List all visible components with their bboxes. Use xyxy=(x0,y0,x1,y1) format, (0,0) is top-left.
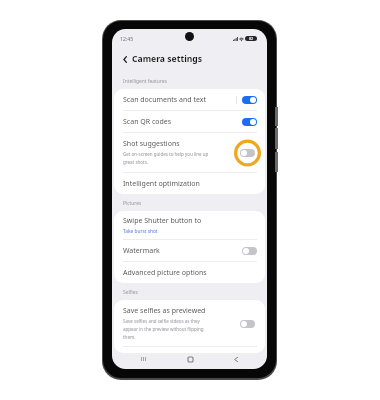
button[interactable]: Watermark xyxy=(114,240,265,261)
staticText: 12:45 xyxy=(120,35,134,42)
button[interactable]: Save selfies as previewed xyxy=(114,300,265,346)
button[interactable]: Turn on xyxy=(240,149,255,157)
button[interactable]: Intelligent optimization xyxy=(114,173,265,194)
button[interactable]: Back xyxy=(118,51,131,67)
staticText: Pictures xyxy=(123,200,142,207)
button[interactable]: Back xyxy=(228,351,244,367)
staticText: Scan documents and text xyxy=(123,95,236,105)
staticText: Save selfies and selfie videos as they a… xyxy=(123,318,204,341)
staticText: Scan QR codes xyxy=(123,117,242,127)
staticText: Intelligent optimization xyxy=(123,179,200,189)
button[interactable]: Scan QR codes xyxy=(114,111,265,132)
button[interactable]: Home xyxy=(182,351,198,367)
staticText: Intelligent features xyxy=(123,78,167,85)
button[interactable]: Turn off xyxy=(242,96,257,104)
button[interactable]: Turn on xyxy=(240,320,255,328)
button[interactable]: Advanced picture options xyxy=(114,262,265,283)
staticText: Take burst shot xyxy=(123,228,158,235)
button[interactable]: Recents xyxy=(135,351,151,367)
staticText: Advanced picture options xyxy=(123,268,207,278)
button[interactable]: Shot suggestions xyxy=(114,133,265,172)
button[interactable]: Swipe Shutter button to xyxy=(114,211,265,239)
staticText: Shot suggestions xyxy=(123,139,180,149)
staticText: Swipe Shutter button to xyxy=(123,216,202,226)
staticText: Save selfies as previewed xyxy=(123,306,206,316)
staticText: Get on-screen guides to help you line up… xyxy=(123,151,209,166)
staticText: Camera settings xyxy=(132,53,203,65)
staticText: Selfies xyxy=(123,289,138,296)
button[interactable]: Scan documents and text xyxy=(114,89,265,110)
staticText: 82 xyxy=(249,36,254,41)
staticText: Watermark xyxy=(123,246,242,256)
button[interactable]: Turn on xyxy=(242,247,257,255)
button[interactable]: Turn off xyxy=(242,118,257,126)
